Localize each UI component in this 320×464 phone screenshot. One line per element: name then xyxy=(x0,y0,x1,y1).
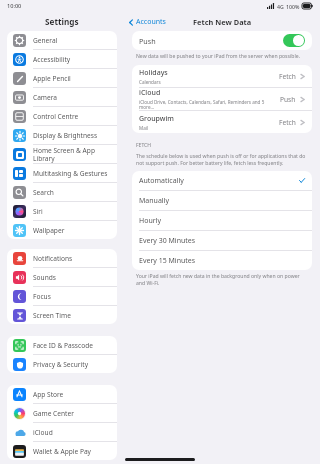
staticText: iCloud xyxy=(33,428,53,437)
staticText: FETCH xyxy=(136,142,151,149)
button[interactable]: Groupwim xyxy=(132,111,312,133)
button[interactable]: Siri xyxy=(7,202,117,220)
button[interactable]: Sounds xyxy=(7,268,117,286)
staticText: Search xyxy=(33,188,54,197)
staticText: Privacy & Security xyxy=(33,360,88,369)
button[interactable]: Home Screen & App Library xyxy=(7,145,117,163)
staticText: Calendars xyxy=(139,79,161,85)
staticText: Screen Time xyxy=(33,311,71,320)
staticText: 10:00 xyxy=(7,2,22,10)
staticText: Groupwim xyxy=(139,114,174,124)
staticText: Display & Brightness xyxy=(33,131,98,140)
staticText: Camera xyxy=(33,93,58,102)
staticText: Accounts xyxy=(136,17,166,27)
button[interactable]: iCloud xyxy=(7,423,117,441)
staticText: Notifications xyxy=(33,254,73,263)
button[interactable]: iCloud xyxy=(132,88,312,110)
button[interactable]: Focus xyxy=(7,287,117,305)
button[interactable]: Camera xyxy=(7,88,117,106)
staticText: Every 15 Minutes xyxy=(139,256,305,266)
button[interactable]: Notifications xyxy=(7,249,117,267)
button[interactable]: Manually xyxy=(132,191,312,210)
staticText: Hourly xyxy=(139,216,305,226)
staticText: Fetch xyxy=(279,72,296,81)
staticText: Home Screen & App Library xyxy=(33,146,117,163)
staticText: Mail xyxy=(139,125,149,131)
staticText: 100% xyxy=(286,3,300,10)
button[interactable]: Wallpaper xyxy=(7,221,117,239)
staticText: Manually xyxy=(139,196,305,206)
staticText: Accessibility xyxy=(33,55,71,64)
staticText: General xyxy=(33,36,58,45)
staticText: Game Center xyxy=(33,409,74,418)
button[interactable]: Screen Time xyxy=(7,306,117,324)
button[interactable]: Wallet & Apple Pay xyxy=(7,442,117,460)
staticText: Holidays xyxy=(139,68,168,78)
staticText: Focus xyxy=(33,292,51,301)
button[interactable]: Privacy & Security xyxy=(7,355,117,373)
staticText: Push xyxy=(139,36,283,46)
staticText: iCloud Drive, Contacts, Calendars, Safar… xyxy=(139,99,280,110)
staticText: New data will be pushed to your iPad fro… xyxy=(136,53,300,60)
button[interactable]: Automatically xyxy=(132,171,312,190)
button[interactable]: App Store xyxy=(7,385,117,403)
staticText: Multitasking & Gestures xyxy=(33,169,108,178)
staticText: Settings xyxy=(45,16,79,27)
button[interactable]: Display & Brightness xyxy=(7,126,117,144)
button[interactable]: Search xyxy=(7,183,117,201)
staticText: Fetch New Data xyxy=(193,17,252,27)
staticText: Sounds xyxy=(33,273,56,282)
other: Push toggle, on xyxy=(283,34,305,47)
staticText: Siri xyxy=(33,207,43,216)
button[interactable]: Hourly xyxy=(132,211,312,230)
staticText: 4G xyxy=(277,3,284,10)
button[interactable]: Accounts xyxy=(124,14,171,30)
button[interactable]: Multitasking & Gestures xyxy=(7,164,117,182)
staticText: Your iPad will fetch new data in the bac… xyxy=(136,273,308,286)
button[interactable]: Apple Pencil xyxy=(7,69,117,87)
staticText: The schedule below is used when push is … xyxy=(136,153,308,166)
button[interactable]: Holidays xyxy=(132,65,312,87)
button[interactable]: Face ID & Passcode xyxy=(7,336,117,354)
staticText: iCloud xyxy=(139,88,161,98)
button[interactable]: Every 30 Minutes xyxy=(132,231,312,250)
button[interactable]: Every 15 Minutes xyxy=(132,251,312,270)
button[interactable]: Control Centre xyxy=(7,107,117,125)
staticText: App Store xyxy=(33,390,64,399)
button[interactable]: General xyxy=(7,31,117,49)
staticText: Fetch xyxy=(279,118,296,127)
button[interactable]: Accessibility xyxy=(7,50,117,68)
staticText: Face ID & Passcode xyxy=(33,341,93,350)
staticText: Every 30 Minutes xyxy=(139,236,305,246)
button[interactable]: Push xyxy=(132,31,312,50)
staticText: Wallet & Apple Pay xyxy=(33,447,91,456)
staticText: Control Centre xyxy=(33,112,79,121)
button[interactable]: Game Center xyxy=(7,404,117,422)
staticText: Automatically xyxy=(139,176,299,186)
staticText: Apple Pencil xyxy=(33,74,71,83)
staticText: Push xyxy=(280,95,296,104)
staticText: Wallpaper xyxy=(33,226,65,235)
